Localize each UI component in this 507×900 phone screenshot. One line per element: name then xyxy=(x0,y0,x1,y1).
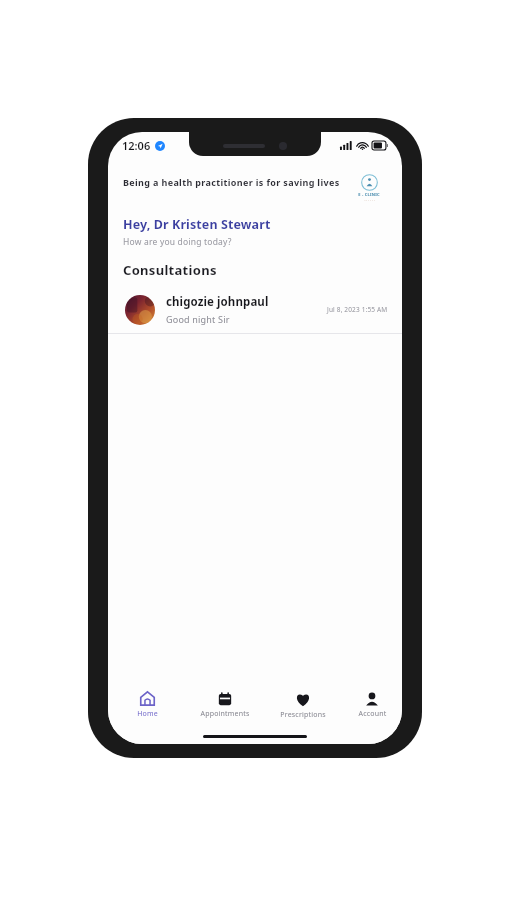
other: Account xyxy=(365,692,379,706)
other: Appointments xyxy=(218,692,232,706)
staticText: Home xyxy=(137,709,158,719)
staticText: E - CLINIC xyxy=(358,192,380,197)
staticText: Good night Sir xyxy=(166,313,230,325)
staticText: Consultations xyxy=(123,261,217,279)
other: Prescriptions xyxy=(295,691,311,707)
staticText: Prescriptions xyxy=(280,710,326,720)
other: Home xyxy=(140,691,155,706)
staticText: Account xyxy=(358,709,387,719)
button[interactable]: Appointments xyxy=(186,688,264,723)
staticText: How are you doing today? xyxy=(123,236,232,248)
button[interactable]: chigozie johnpaul xyxy=(108,286,402,333)
staticText: 12:06 xyxy=(122,138,151,153)
button[interactable]: Home xyxy=(108,687,186,723)
staticText: Jul 8, 2023 1:55 AM xyxy=(327,305,388,314)
staticText: chigozie johnpaul xyxy=(166,294,269,310)
staticText: Hey, Dr Kristen Stewart xyxy=(123,216,271,233)
staticText: Being a health practitioner is for savin… xyxy=(123,176,340,188)
staticText: · · · · · · xyxy=(364,198,375,203)
button[interactable]: Prescriptions xyxy=(264,687,342,724)
staticText: Appointments xyxy=(200,709,250,719)
button[interactable]: Account xyxy=(342,688,402,723)
